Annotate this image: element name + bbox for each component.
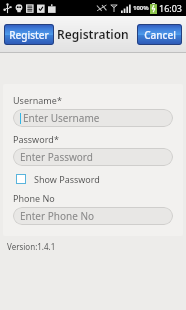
staticText: Phone No — [13, 192, 55, 204]
button[interactable]: Enter Password — [13, 148, 173, 166]
button[interactable]: Enter Phone No — [13, 207, 173, 225]
staticText: Enter Username — [23, 111, 100, 125]
staticText: 16:03 — [159, 2, 183, 14]
staticText: 100% — [133, 4, 149, 12]
button[interactable]: Show Password — [13, 172, 100, 186]
staticText: * — [54, 133, 59, 145]
staticText: Registration — [57, 26, 129, 42]
staticText: Show Password — [34, 173, 100, 185]
button[interactable]: Register — [4, 24, 54, 45]
staticText: Register — [9, 28, 49, 42]
staticText: Password — [13, 133, 54, 145]
staticText: Username — [13, 94, 57, 106]
staticText: Cancel — [144, 28, 176, 42]
staticText: Enter Password — [20, 150, 93, 164]
button[interactable]: Enter Username — [13, 109, 173, 127]
staticText: Version:1.4.1 — [7, 241, 56, 252]
staticText: * — [57, 94, 62, 106]
staticText: Enter Phone No — [20, 209, 95, 223]
button[interactable]: Cancel — [137, 24, 182, 45]
